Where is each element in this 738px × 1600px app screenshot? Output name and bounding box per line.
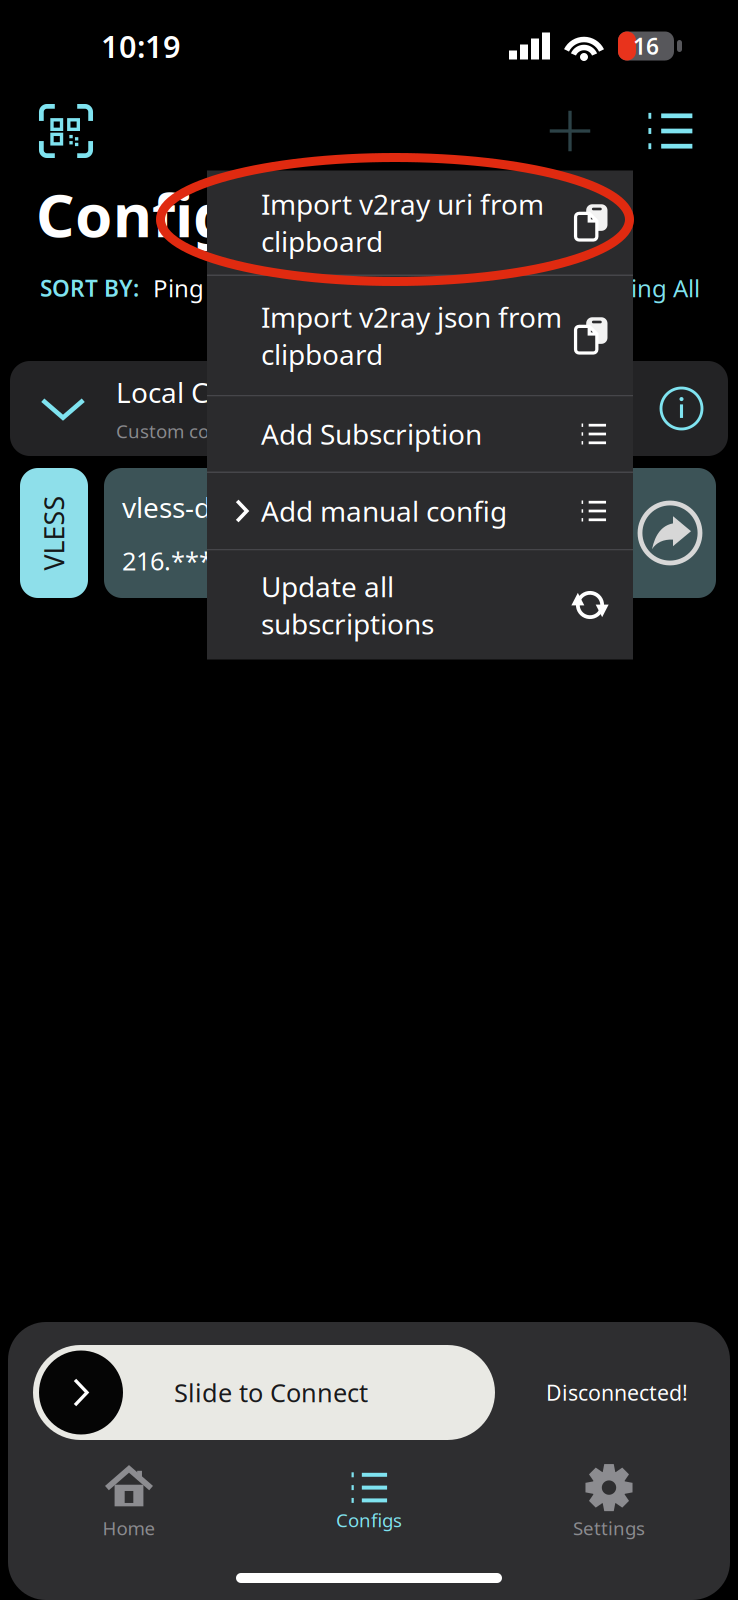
button[interactable]: Add configuration [522, 92, 618, 170]
staticText: 216.****:443 [122, 544, 276, 577]
staticText: 16 [633, 31, 659, 61]
staticText: Ping [153, 272, 204, 304]
staticText: Import v2ray json from clipboard [261, 298, 562, 373]
staticText: Custom configs [116, 419, 252, 443]
button[interactable]: Add manual config [207, 473, 633, 549]
button[interactable]: Local Configs [10, 361, 728, 456]
staticText: Configs [336, 1508, 402, 1532]
staticText: Home [102, 1516, 155, 1540]
staticText: Ping All [616, 272, 700, 304]
button[interactable]: Ping All [616, 262, 738, 314]
button[interactable]: Import v2ray json from clipboard [207, 276, 633, 395]
staticText: Add manual config [261, 492, 507, 530]
staticText: Update all subscriptions [261, 568, 434, 642]
staticText: Import v2ray uri from clipboard [261, 185, 544, 260]
button[interactable]: Add Subscription [207, 396, 633, 471]
staticText: Slide to Connect [174, 1376, 368, 1409]
button[interactable]: Configs [249, 1447, 489, 1557]
button[interactable]: Import options [618, 92, 722, 170]
button[interactable]: SORT BY: [0, 262, 204, 314]
staticText: Local Configs [116, 373, 290, 411]
staticText: 10:19 [101, 26, 181, 66]
staticText: vless-dz [122, 489, 224, 526]
button[interactable]: Import v2ray uri from clipboard [207, 170, 633, 274]
button[interactable]: VLESS [0, 468, 738, 598]
staticText: Disconnected! [546, 1378, 688, 1407]
button[interactable]: Settings [489, 1447, 729, 1557]
button[interactable]: Home [9, 1447, 249, 1557]
staticText: SORT BY: [40, 273, 139, 303]
staticText: VLESS [16, 515, 91, 551]
staticText: Configs [36, 174, 261, 254]
staticText: Add Subscription [261, 415, 482, 453]
button[interactable]: Update all subscriptions [207, 550, 633, 659]
staticText: Settings [573, 1516, 645, 1540]
button[interactable]: Scan QR code [14, 92, 118, 170]
button[interactable]: Slide to Connect [33, 1345, 495, 1440]
